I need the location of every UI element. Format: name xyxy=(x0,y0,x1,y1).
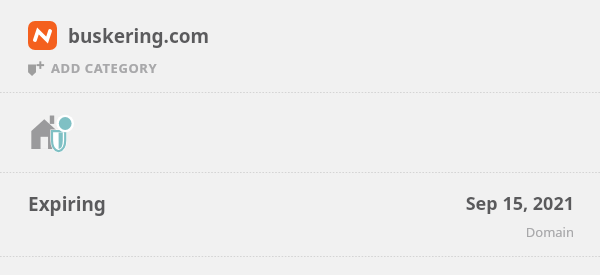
staticText: buskering.com xyxy=(68,23,210,49)
other: Add category xyxy=(27,59,45,77)
staticText: Sep 15, 2021 xyxy=(465,191,574,216)
button[interactable]: Add category xyxy=(27,59,158,77)
staticText: ADD CATEGORY xyxy=(51,59,158,77)
button[interactable]: buskering.com xyxy=(28,21,600,50)
button[interactable]: Domain protection xyxy=(30,114,74,152)
button[interactable]: Expiring xyxy=(0,173,600,256)
staticText: Expiring xyxy=(28,191,106,217)
staticText: Domain xyxy=(525,223,574,241)
